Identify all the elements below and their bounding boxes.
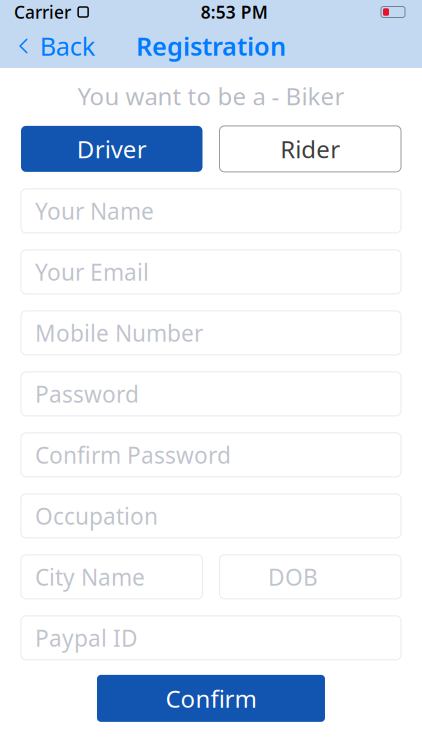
staticText: Confirm Password [35,440,231,470]
staticText: Occupation [35,501,158,531]
staticText [71,0,76,23]
staticText: Registration [136,29,286,63]
staticText: Your Email [35,257,149,287]
staticText: Paypal ID [35,623,138,653]
staticText: DOB [268,562,318,592]
staticText: Rider [280,133,340,165]
staticText: Carrier [14,0,71,23]
staticText: Back [40,29,96,63]
staticText: Driver [77,133,147,165]
staticText: 8:53 PM [201,0,268,23]
button[interactable]: Rider [219,126,401,172]
staticText: Mobile Number [35,318,203,348]
staticText: City Name [35,562,145,592]
staticText: Confirm [165,682,256,714]
button[interactable]: Back [0,24,108,68]
button[interactable]: Driver [21,126,202,172]
staticText: Password [35,379,139,409]
staticText: Your Name [35,196,154,226]
button[interactable]: Confirm [97,675,325,722]
staticText: You want to be a - Biker [77,80,344,112]
